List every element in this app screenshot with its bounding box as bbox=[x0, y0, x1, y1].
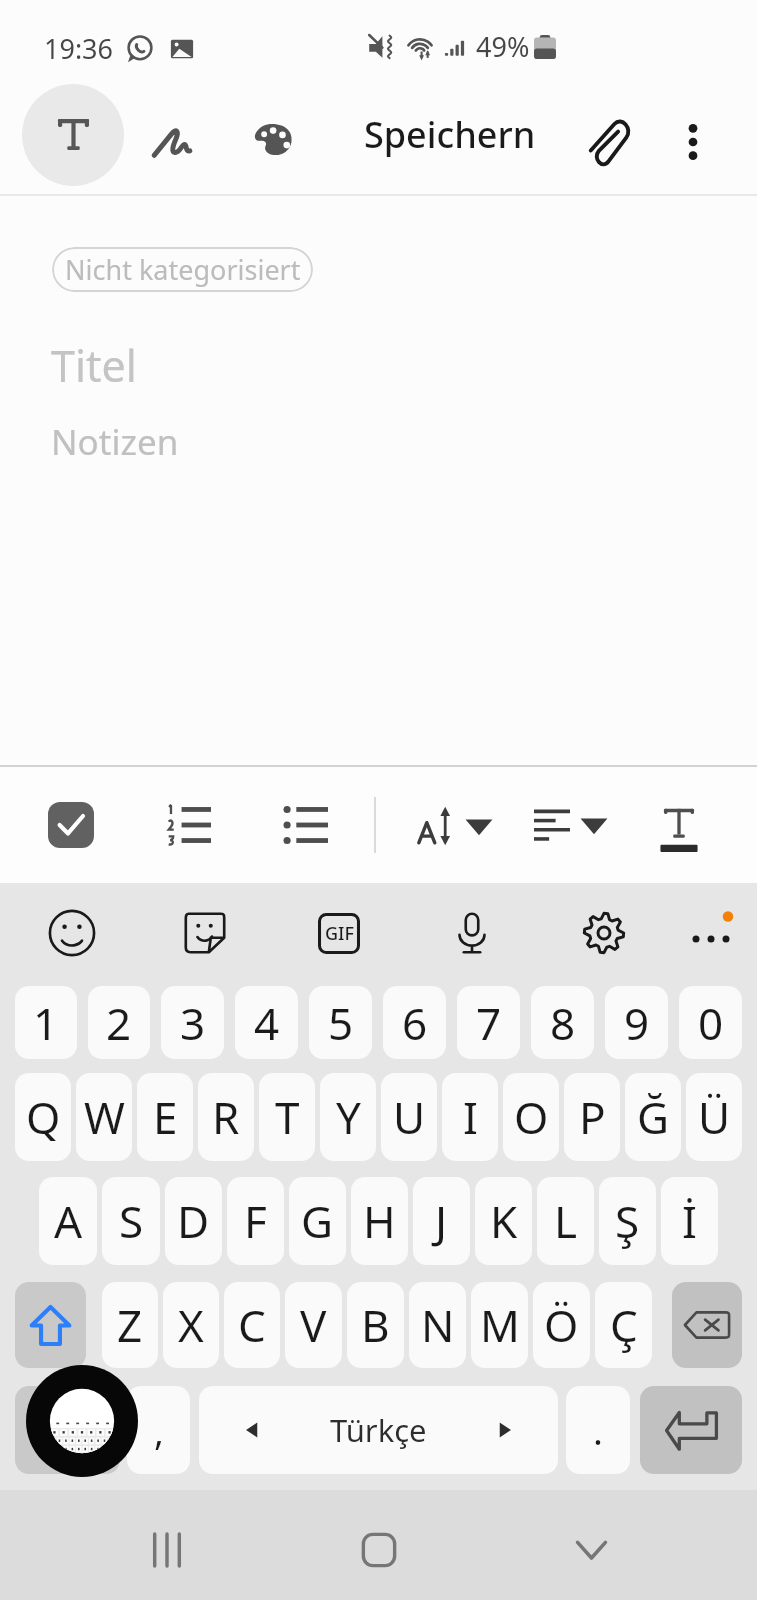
button[interactable]: W bbox=[76, 1073, 132, 1161]
button[interactable]: Voice input bbox=[444, 905, 500, 961]
staticText: Y bbox=[336, 1087, 361, 1147]
button[interactable]: 3 bbox=[161, 986, 224, 1059]
button[interactable]: N bbox=[409, 1282, 466, 1368]
button[interactable]: Text mode bbox=[22, 84, 124, 186]
button[interactable]: 7 bbox=[457, 986, 520, 1059]
button[interactable]: M bbox=[471, 1282, 528, 1368]
button[interactable]: B bbox=[347, 1282, 404, 1368]
staticText: 8 bbox=[550, 993, 576, 1053]
staticText: T bbox=[275, 1087, 300, 1147]
staticText: L bbox=[554, 1191, 578, 1251]
button[interactable]: 0 bbox=[679, 986, 742, 1059]
staticText: 5 bbox=[328, 993, 354, 1053]
button[interactable]: More bbox=[683, 905, 739, 961]
staticText: P bbox=[579, 1087, 606, 1147]
button[interactable]: Enter bbox=[640, 1386, 742, 1474]
button[interactable]: 5 bbox=[309, 986, 372, 1059]
staticText: Ş bbox=[615, 1191, 640, 1251]
staticText: Titel bbox=[51, 336, 137, 395]
button[interactable]: H bbox=[351, 1177, 408, 1265]
button[interactable]: . bbox=[566, 1386, 630, 1474]
staticText: 3 bbox=[180, 993, 206, 1053]
button[interactable]: S bbox=[102, 1177, 160, 1265]
button[interactable]: Emoji bbox=[44, 905, 100, 961]
staticText: C bbox=[238, 1295, 266, 1355]
staticText: I bbox=[463, 1087, 478, 1147]
button[interactable]: Checklist bbox=[48, 802, 94, 848]
button[interactable]: Ğ bbox=[625, 1073, 681, 1161]
button[interactable]: I bbox=[442, 1073, 498, 1161]
button[interactable]: Numbered list bbox=[160, 797, 216, 853]
button[interactable]: V bbox=[285, 1282, 342, 1368]
staticText: W bbox=[84, 1087, 125, 1147]
button[interactable]: Shift bbox=[15, 1282, 86, 1368]
button[interactable]: Z bbox=[102, 1282, 158, 1368]
staticText: M bbox=[480, 1295, 520, 1355]
button[interactable]: Alignment bbox=[528, 791, 616, 859]
button[interactable]: Ö bbox=[533, 1282, 590, 1368]
staticText: G bbox=[301, 1191, 334, 1251]
staticText: Türkçe bbox=[330, 1409, 427, 1451]
button[interactable]: Attach bbox=[571, 102, 645, 176]
button[interactable]: , bbox=[127, 1386, 190, 1474]
staticText: 1 bbox=[33, 993, 59, 1053]
button[interactable]: C bbox=[224, 1282, 280, 1368]
button[interactable]: Ü bbox=[686, 1073, 742, 1161]
button[interactable]: Nicht kategorisiert bbox=[52, 247, 313, 292]
button[interactable]: J bbox=[413, 1177, 470, 1265]
button[interactable]: 9 bbox=[605, 986, 668, 1059]
staticText: Ğ bbox=[637, 1087, 670, 1147]
button[interactable]: More options bbox=[656, 105, 730, 179]
staticText: 49% bbox=[476, 28, 530, 65]
button[interactable]: P bbox=[564, 1073, 620, 1161]
button[interactable]: 4 bbox=[235, 986, 298, 1059]
button[interactable]: Handwriting bbox=[137, 105, 207, 175]
staticText: H bbox=[363, 1191, 396, 1251]
staticText: O bbox=[514, 1087, 549, 1147]
button[interactable]: Backspace bbox=[672, 1282, 742, 1368]
button[interactable]: Drawing palette bbox=[238, 105, 308, 175]
staticText: . bbox=[593, 1405, 603, 1455]
button[interactable]: L bbox=[537, 1177, 594, 1265]
button[interactable]: 8 bbox=[531, 986, 594, 1059]
button[interactable]: Text size bbox=[410, 791, 500, 859]
staticText: 19:36 bbox=[44, 30, 114, 67]
button[interactable]: G bbox=[289, 1177, 346, 1265]
button[interactable]: Türkçe bbox=[199, 1386, 558, 1474]
button[interactable]: 2 bbox=[88, 986, 150, 1059]
button[interactable]: Text style bbox=[646, 787, 712, 863]
button[interactable]: T bbox=[259, 1073, 315, 1161]
button[interactable]: GIF bbox=[311, 905, 367, 961]
button[interactable]: Hide keyboard bbox=[539, 1498, 643, 1600]
button[interactable]: A bbox=[39, 1177, 97, 1265]
button[interactable]: Speichern bbox=[352, 102, 548, 167]
button[interactable]: Stickers bbox=[177, 905, 233, 961]
button[interactable]: İ bbox=[661, 1177, 718, 1265]
button[interactable]: F bbox=[227, 1177, 284, 1265]
button[interactable]: Home bbox=[327, 1498, 431, 1600]
button[interactable]: Ş bbox=[599, 1177, 656, 1265]
button[interactable]: 6 bbox=[383, 986, 446, 1059]
staticText: X bbox=[178, 1295, 204, 1355]
button[interactable]: U bbox=[381, 1073, 437, 1161]
button[interactable]: Q bbox=[15, 1073, 71, 1161]
button[interactable]: O bbox=[503, 1073, 559, 1161]
button[interactable]: 1 bbox=[15, 986, 77, 1059]
button[interactable]: D bbox=[165, 1177, 222, 1265]
button[interactable]: Recent apps bbox=[115, 1498, 219, 1600]
button[interactable]: X bbox=[163, 1282, 219, 1368]
button[interactable]: Y bbox=[320, 1073, 376, 1161]
staticText: R bbox=[212, 1087, 240, 1147]
staticText: J bbox=[435, 1191, 448, 1251]
button[interactable]: Keyboard settings bbox=[576, 905, 632, 961]
button[interactable]: Symbols bbox=[15, 1386, 120, 1474]
staticText: Notizen bbox=[51, 418, 179, 466]
button[interactable]: R bbox=[198, 1073, 254, 1161]
button[interactable]: Ç bbox=[595, 1282, 652, 1368]
button[interactable]: E bbox=[137, 1073, 193, 1161]
button[interactable]: Bulleted list bbox=[278, 797, 334, 853]
button[interactable]: K bbox=[475, 1177, 532, 1265]
staticText: A bbox=[54, 1191, 83, 1251]
staticText: Z bbox=[117, 1295, 143, 1355]
staticText: , bbox=[154, 1405, 164, 1455]
